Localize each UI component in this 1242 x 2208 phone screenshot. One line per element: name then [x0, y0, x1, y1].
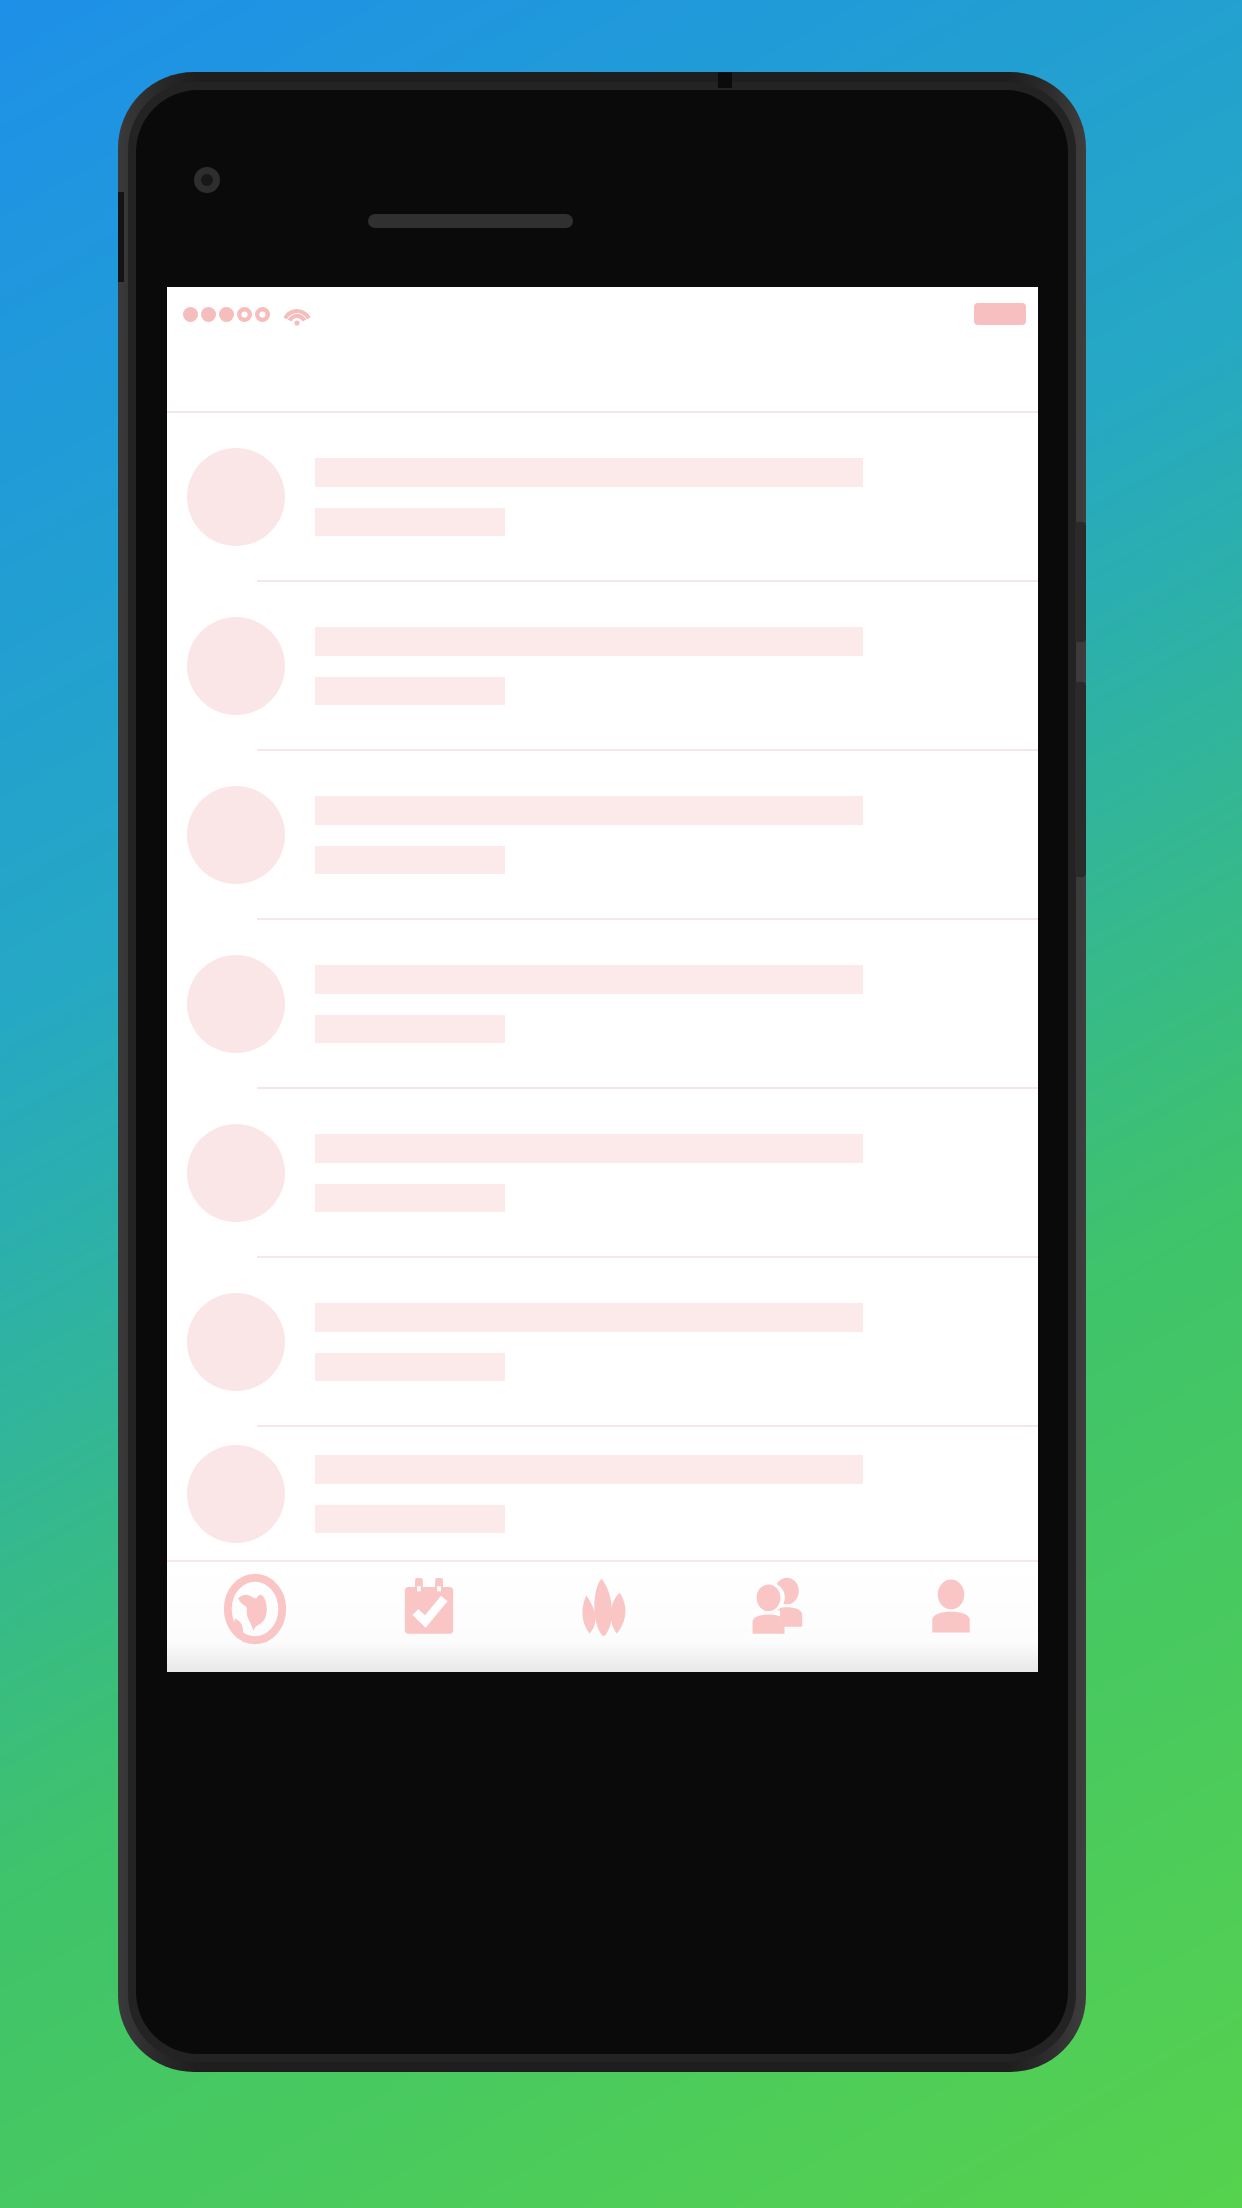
- button[interactable]: [167, 1089, 1038, 1256]
- button[interactable]: [167, 1258, 1038, 1425]
- button[interactable]: [167, 751, 1038, 918]
- button[interactable]: [167, 582, 1038, 749]
- button[interactable]: Profile: [864, 1562, 1038, 1672]
- button[interactable]: World: [167, 1562, 342, 1672]
- button[interactable]: [167, 1427, 1038, 1560]
- button[interactable]: Friends: [690, 1562, 864, 1672]
- button[interactable]: [167, 413, 1038, 580]
- button[interactable]: Trending: [516, 1562, 690, 1672]
- button[interactable]: Events: [342, 1562, 516, 1672]
- button[interactable]: [167, 920, 1038, 1087]
